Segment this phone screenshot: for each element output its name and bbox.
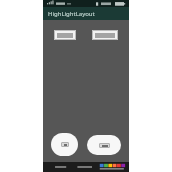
staticText: HighLightLayout [48, 10, 95, 18]
button[interactable] [54, 30, 76, 40]
button[interactable] [92, 30, 118, 40]
button[interactable] [87, 135, 121, 155]
button[interactable] [51, 133, 78, 156]
